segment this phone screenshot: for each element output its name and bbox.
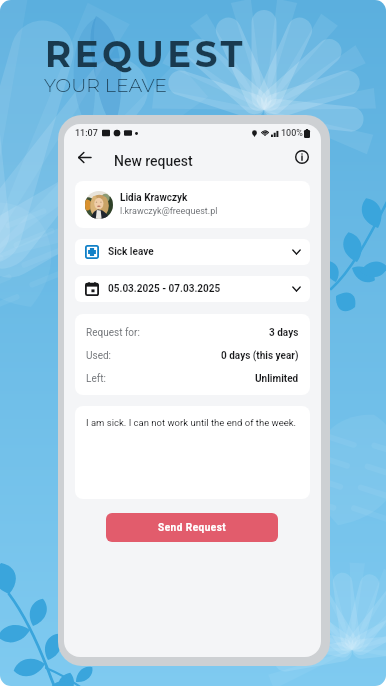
staticText: 100%	[281, 128, 303, 139]
staticText: Left:	[86, 373, 106, 385]
staticText: Request for:	[86, 327, 140, 339]
button[interactable]: Sick leave	[75, 239, 310, 265]
button[interactable]: 05.03.2025 - 07.03.2025	[75, 276, 310, 302]
staticText: I am sick. I can not work until the end …	[86, 417, 297, 428]
button[interactable]: Lidia Krawczyk	[75, 181, 310, 228]
staticText: 11:07	[75, 128, 98, 139]
button[interactable]: Back	[72, 145, 96, 169]
staticText: 3 days	[269, 327, 299, 339]
staticText: Lidia Krawczyk	[120, 192, 188, 204]
staticText: 05.03.2025 - 07.03.2025	[108, 283, 221, 295]
button[interactable]: Send Request	[106, 513, 278, 542]
staticText: Used:	[86, 350, 112, 362]
button[interactable]: Info	[290, 145, 314, 169]
staticText: l.krawczyk@freequest.pl	[120, 206, 218, 217]
staticText: Sick leave	[108, 246, 154, 258]
staticText: 0 days (this year)	[221, 350, 299, 362]
staticText: New request	[114, 153, 193, 169]
button[interactable]: I am sick. I can not work until the end …	[75, 406, 310, 499]
staticText: Unlimited	[255, 373, 299, 385]
staticText: REQUEST	[45, 33, 247, 76]
staticText: Send Request	[158, 522, 227, 534]
staticText: YOUR LEAVE	[44, 74, 167, 97]
